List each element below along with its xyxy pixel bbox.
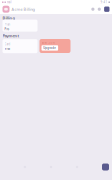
button[interactable]: Upgrade — [41, 45, 58, 51]
button[interactable]: Acme Billing — [2, 6, 34, 13]
staticText: Upgrade — [43, 46, 56, 50]
button[interactable]: Card — [2, 39, 37, 53]
button[interactable]: Compose — [102, 163, 109, 170]
staticText: Pro — [4, 27, 9, 31]
staticText: 9:41 — [101, 0, 108, 4]
button[interactable]: Notifications — [98, 8, 101, 11]
staticText: Payment — [2, 33, 19, 38]
button[interactable]: Account — [104, 6, 109, 12]
button[interactable]: Plan — [2, 20, 37, 32]
staticText: Card — [4, 42, 10, 46]
staticText: Plan — [4, 23, 10, 26]
staticText: mail — [7, 0, 12, 4]
staticText: Save 20% — [41, 41, 54, 44]
button[interactable]: Search — [91, 8, 94, 11]
staticText: Visa — [4, 47, 10, 50]
staticText: Acme Billing — [11, 6, 34, 12]
staticText: Billing — [2, 15, 15, 20]
